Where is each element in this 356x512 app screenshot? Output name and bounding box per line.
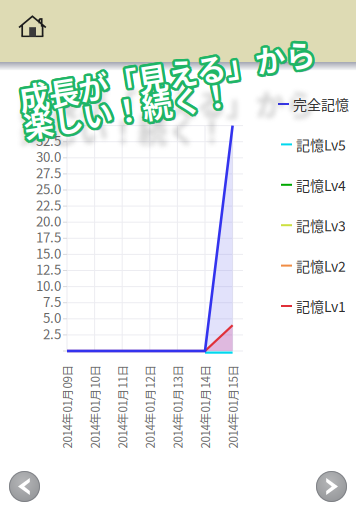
staticText: 成長が「見える」から [21, 55, 320, 99]
staticText: 成長が「見える」から [18, 54, 317, 98]
staticText: 5.0 [43, 308, 61, 327]
staticText: 成長が「見える」から [17, 51, 316, 95]
staticText: 成長が「見える」から [18, 51, 317, 94]
staticText: 楽しい！続く！ [21, 82, 231, 126]
staticText: 記憶Lv5 [296, 134, 346, 155]
staticText: 2014年01月09日 [25, 398, 109, 415]
staticText: 成長が「見える」から [17, 54, 316, 97]
staticText: 楽しい！続く！ [22, 79, 232, 122]
staticText: 楽しい！続く！ [18, 82, 228, 125]
staticText: 成長が「見える」から [21, 55, 320, 98]
staticText: 2.5 [43, 324, 61, 343]
staticText: 記憶Lv2 [296, 255, 346, 276]
staticText: 完全記憶 [293, 94, 349, 114]
staticText: 楽しい！続く！ [22, 81, 232, 125]
staticText: 25.0 [36, 179, 61, 198]
staticText: 2014年01月11日 [80, 398, 164, 415]
button[interactable]: Home [0, 1, 60, 61]
staticText: 記憶Lv4 [296, 175, 346, 195]
staticText: 楽しい！続く！ [18, 82, 228, 126]
staticText: 成長が「見える」から [21, 54, 320, 98]
staticText: 22.5 [36, 195, 61, 214]
staticText: 30.0 [36, 147, 61, 166]
staticText: 32.5 [36, 130, 61, 150]
staticText: 成長が「見える」から [21, 50, 320, 94]
staticText: 2014年01月10日 [53, 398, 137, 415]
staticText: 2014年01月15日 [191, 398, 275, 415]
staticText: 成長が「見える」から [22, 54, 321, 97]
staticText: 楽しい！続く！ [18, 78, 228, 121]
staticText: 楽しい！続く！ [21, 78, 231, 121]
staticText: 2014年01月12日 [108, 398, 192, 415]
staticText: 成長が「見える」から [21, 51, 320, 94]
staticText: 成長が「見える」から [19, 50, 318, 94]
button[interactable]: Previous [0, 463, 49, 510]
staticText: 15.0 [36, 243, 61, 262]
staticText: 成長が「見える」から [18, 55, 317, 98]
staticText: 27.5 [36, 163, 61, 182]
staticText: 楽しい！続く！ [19, 80, 229, 123]
staticText: 記憶Lv3 [296, 215, 346, 235]
staticText: 12.5 [36, 259, 61, 279]
staticText: 楽しい！続く！ [18, 78, 228, 122]
staticText: 成長が「見える」から [18, 50, 317, 94]
staticText: 成長が「見える」から [19, 53, 318, 96]
staticText: 楽しい！続く！ [19, 82, 229, 126]
staticText: 楽しい！続く！ [17, 79, 227, 122]
staticText: 楽しい！続く！ [22, 80, 232, 123]
staticText: 楽しい！続く！ [21, 82, 231, 125]
staticText: 成長が「見える」から [19, 55, 318, 98]
staticText: 楽しい！続く！ [21, 83, 231, 126]
staticText: 楽しい！続く！ [17, 80, 227, 123]
staticText: 成長が「見える」から [17, 53, 316, 96]
button[interactable]: Next [307, 463, 356, 510]
staticText: 20.0 [36, 211, 61, 230]
staticText: 7.5 [43, 291, 61, 311]
staticText: 2014年01月14日 [163, 398, 247, 415]
staticText: 17.5 [36, 227, 61, 246]
staticText: 成長が「見える」から [22, 53, 321, 96]
staticText: 2014年01月13日 [135, 398, 219, 415]
staticText: 楽しい！続く！ [17, 81, 227, 125]
staticText: 楽しい！続く！ [21, 78, 231, 122]
staticText: 楽しい！続く！ [19, 78, 229, 121]
staticText: 記憶Lv1 [296, 296, 346, 316]
staticText: 10.0 [36, 275, 61, 295]
staticText: 成長が「見える」から [22, 51, 321, 95]
